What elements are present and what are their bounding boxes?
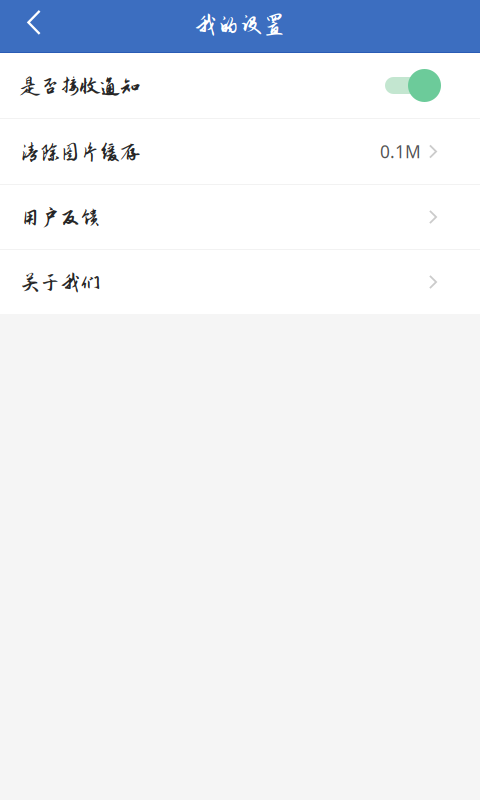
button[interactable]: 用户反馈 (0, 185, 480, 249)
staticText: 关于我们 (20, 272, 100, 294)
button[interactable]: 清除图片缓存，0.1M (0, 119, 480, 184)
button[interactable]: 是否接收通知，已开启 (0, 53, 480, 118)
staticText: 0.1M (380, 140, 421, 163)
button[interactable]: 返回 (0, 0, 59, 53)
staticText: 用户反馈 (20, 207, 100, 229)
staticText: 清除图片缓存 (20, 141, 140, 164)
button[interactable]: 关于我们 (0, 250, 480, 314)
staticText: 是否接收通知 (20, 75, 140, 98)
staticText: 我的设置 (194, 12, 286, 38)
